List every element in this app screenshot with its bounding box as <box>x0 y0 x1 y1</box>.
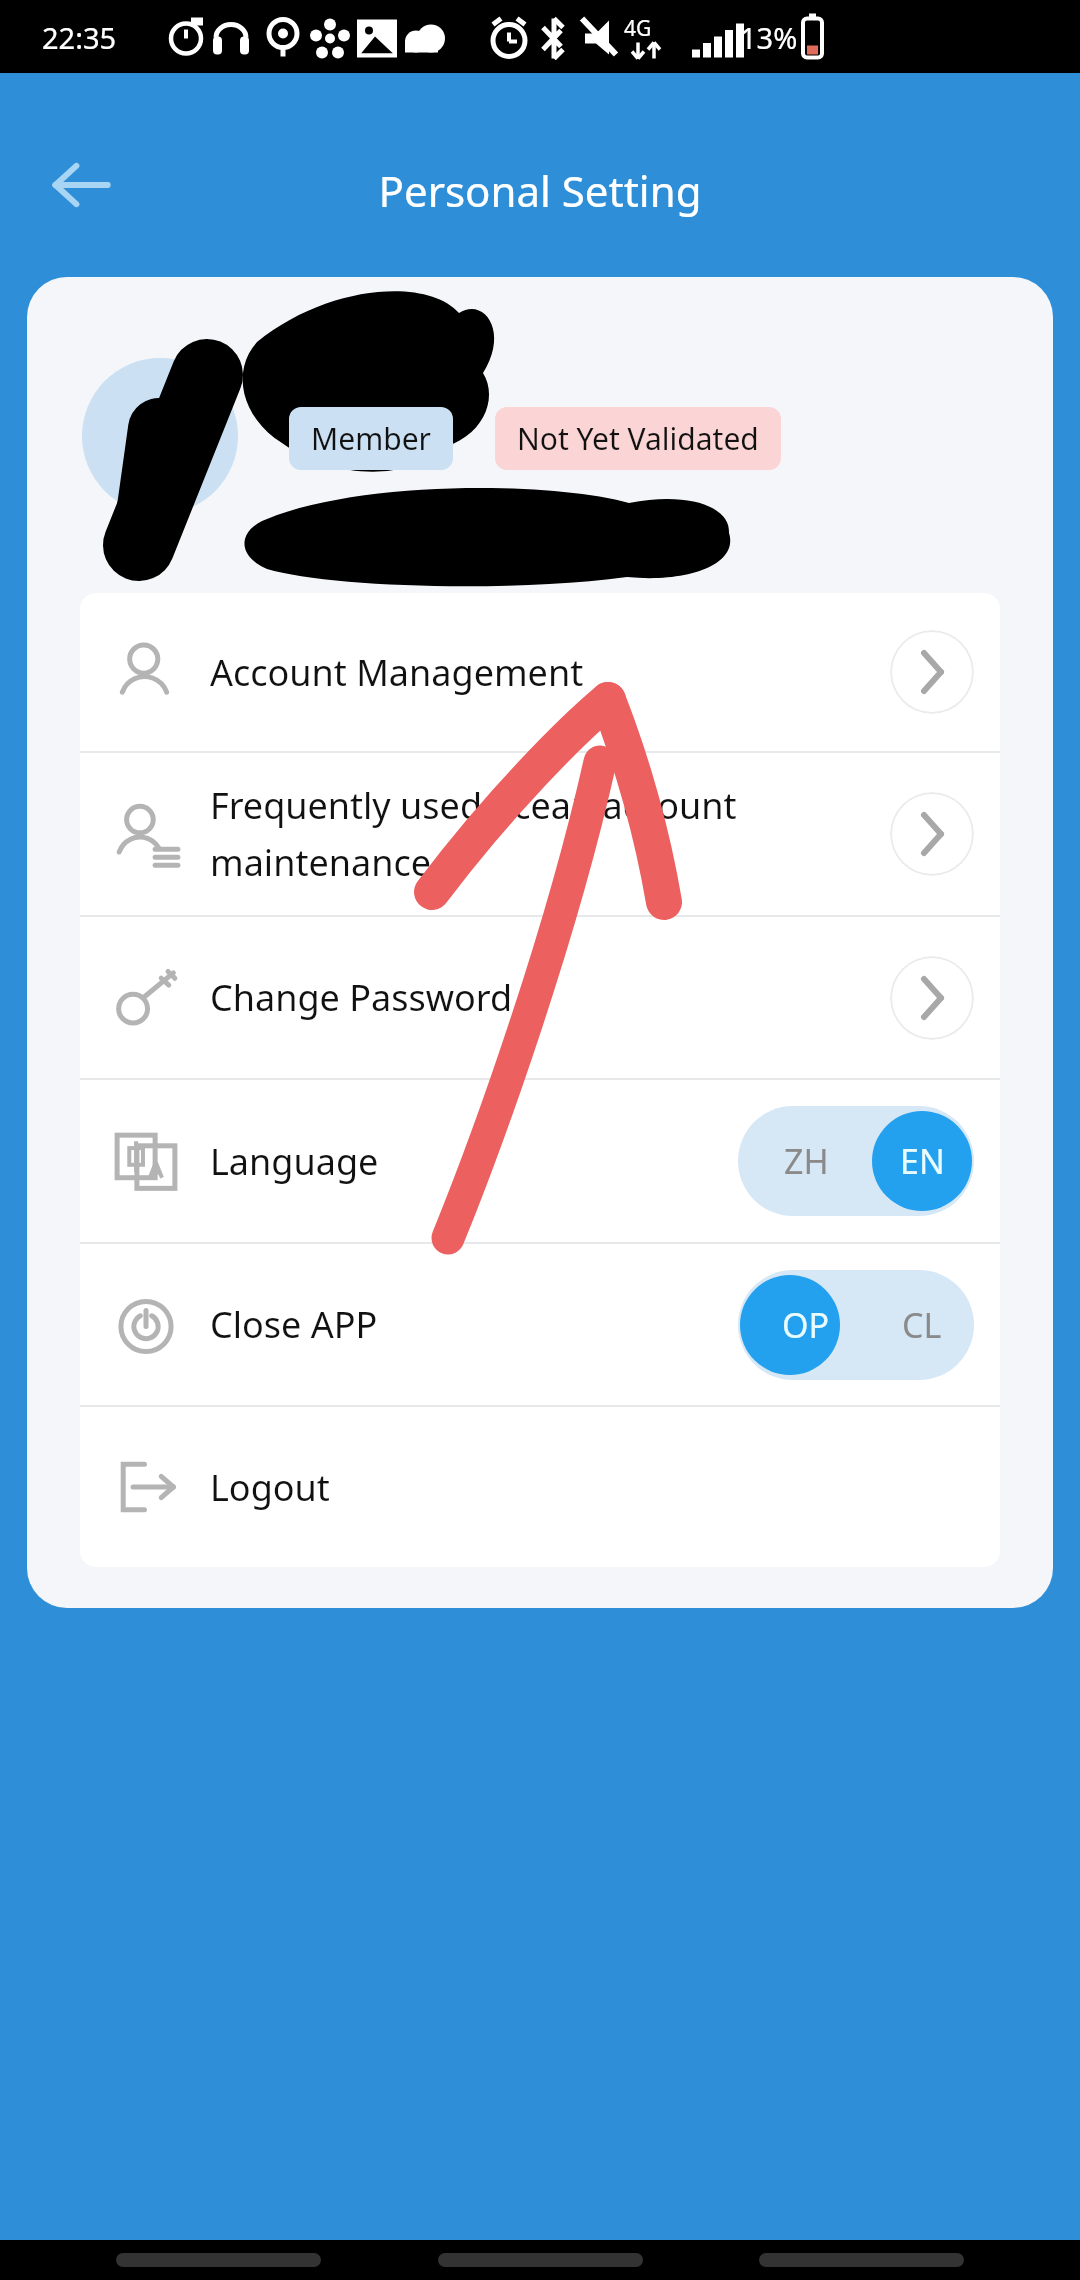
button[interactable]: Frequently used ocean account <box>80 753 1000 915</box>
button[interactable]: Logout <box>80 1407 1000 1567</box>
staticText: Account Management <box>210 648 584 697</box>
button[interactable]: Not Yet Validated <box>495 407 781 470</box>
staticText: ZH <box>784 1138 829 1184</box>
staticText: Frequently used ocean account <box>210 781 737 830</box>
button[interactable]: Close APP <box>80 1244 1000 1405</box>
button[interactable]: Member <box>289 407 453 470</box>
staticText: maintenance <box>210 838 431 887</box>
staticText: 4G <box>624 14 652 43</box>
staticText: OP <box>782 1302 830 1348</box>
button[interactable]: Open <box>890 792 974 876</box>
button[interactable]: Open <box>890 956 974 1040</box>
button[interactable]: Change Password <box>80 917 1000 1078</box>
button[interactable]: ZH <box>738 1106 974 1216</box>
button[interactable] <box>759 2253 964 2267</box>
staticText: CL <box>902 1302 942 1348</box>
button[interactable] <box>116 2253 321 2267</box>
button[interactable]: Language <box>80 1080 1000 1242</box>
button[interactable] <box>438 2253 643 2267</box>
staticText: Member <box>311 418 431 459</box>
button[interactable]: Open <box>890 630 974 714</box>
staticText: EN <box>900 1138 945 1184</box>
button[interactable]: Account Management <box>80 593 1000 751</box>
staticText: Not Yet Validated <box>517 418 759 459</box>
staticText: 13% <box>740 18 798 57</box>
button[interactable]: OP <box>738 1270 974 1380</box>
staticText: 22:35 <box>42 18 117 57</box>
button[interactable]: Back <box>38 142 124 228</box>
staticText: Logout <box>210 1463 330 1512</box>
staticText: Language <box>210 1137 379 1186</box>
staticText: Change Password <box>210 973 513 1022</box>
staticText: Close APP <box>210 1300 378 1349</box>
staticText: Personal Setting <box>0 162 1080 219</box>
